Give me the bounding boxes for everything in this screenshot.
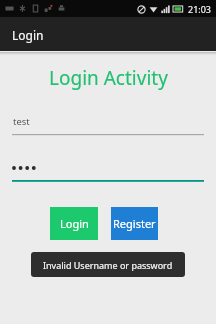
button[interactable]: Login <box>50 207 98 240</box>
staticText: test <box>13 115 30 128</box>
staticText: Invalid Username or password <box>43 259 173 271</box>
staticText: Login Activity <box>49 65 168 91</box>
staticText: Register <box>113 216 156 231</box>
staticText: Login <box>12 27 44 43</box>
staticText: 21:03 <box>188 3 212 15</box>
button[interactable] <box>12 159 204 183</box>
button[interactable]: test <box>12 113 204 137</box>
button[interactable]: Register <box>111 207 158 240</box>
staticText: Login <box>60 216 89 231</box>
